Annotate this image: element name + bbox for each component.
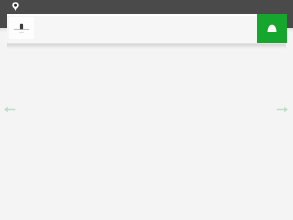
button[interactable]: Search xyxy=(257,14,287,43)
button[interactable]: Previous xyxy=(0,101,20,117)
button[interactable] xyxy=(9,17,34,39)
button[interactable]: Next xyxy=(273,101,293,117)
button[interactable]: Location xyxy=(12,2,19,12)
button[interactable] xyxy=(7,14,286,43)
